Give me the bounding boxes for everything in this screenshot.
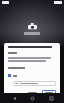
button[interactable]: Home — [27, 93, 37, 103]
button[interactable] — [42, 90, 56, 96]
button[interactable] — [8, 73, 56, 78]
button[interactable]: Recent apps — [46, 93, 56, 103]
button[interactable] — [13, 81, 56, 86]
button[interactable] — [26, 90, 39, 96]
other: Camera — [28, 23, 37, 30]
button[interactable]: Back — [9, 93, 19, 103]
button[interactable] — [8, 56, 56, 63]
